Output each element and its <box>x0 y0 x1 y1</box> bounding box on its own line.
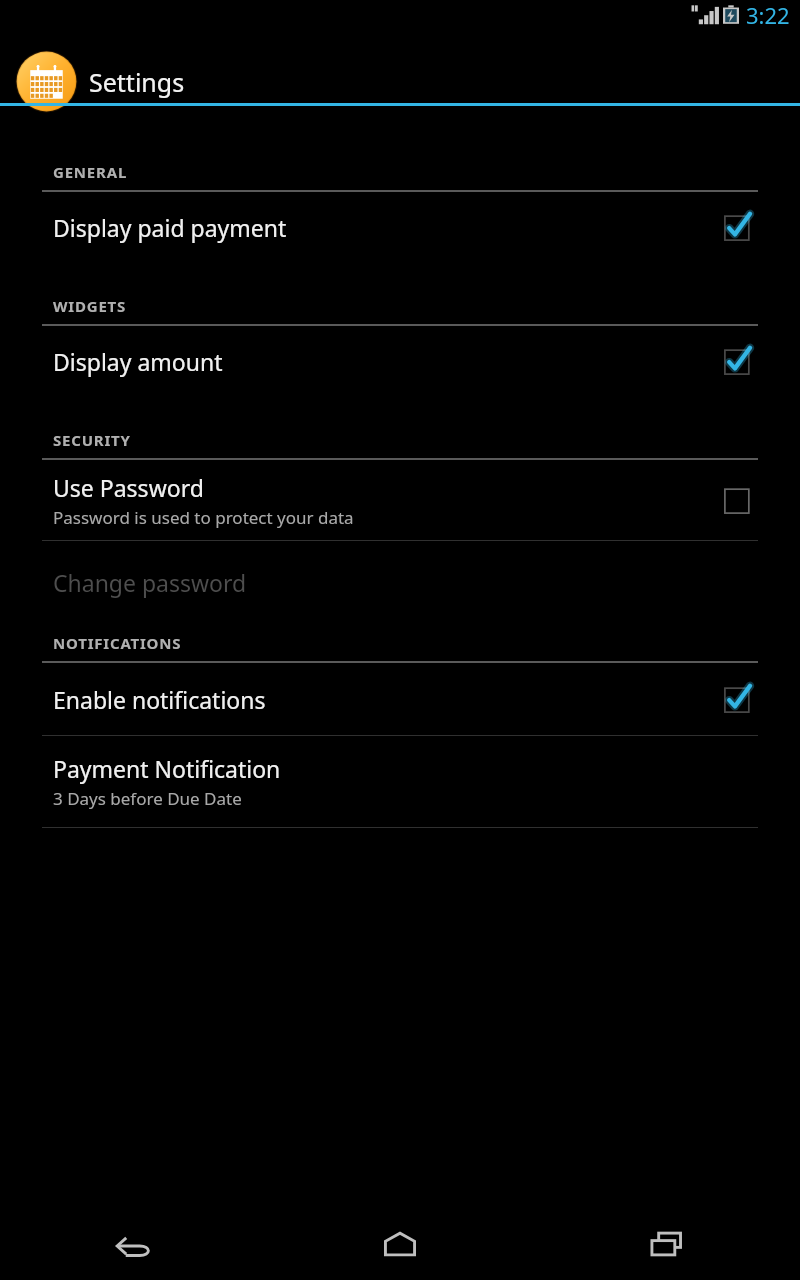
button[interactable]: Back <box>0 1208 266 1280</box>
button[interactable]: Recent apps <box>533 1208 800 1280</box>
button[interactable]: Home <box>266 1208 533 1280</box>
staticText: Settings <box>89 65 185 99</box>
staticText: GENERAL <box>53 162 128 182</box>
staticText: Use Password <box>53 472 204 503</box>
staticText: 3 Days before Due Date <box>53 787 242 810</box>
staticText: SECURITY <box>53 430 131 450</box>
staticText: NOTIFICATIONS <box>53 633 182 653</box>
staticText: 3:22 <box>746 0 790 30</box>
staticText: Password is used to protect your data <box>53 506 354 529</box>
staticText: Enable notifications <box>53 684 266 715</box>
button[interactable]: Display amount <box>0 326 800 396</box>
button[interactable]: Enable notifications <box>0 663 800 735</box>
staticText: Payment Notification <box>53 753 281 784</box>
button[interactable]: Payment Notification <box>0 736 800 827</box>
button[interactable]: Change password <box>0 541 800 623</box>
staticText: Display amount <box>53 346 223 377</box>
button[interactable]: Display paid payment <box>0 192 800 262</box>
staticText: WIDGETS <box>53 296 127 316</box>
staticText: Change password <box>53 567 247 598</box>
staticText: Display paid payment <box>53 212 287 243</box>
button[interactable]: Use Password <box>0 460 800 540</box>
